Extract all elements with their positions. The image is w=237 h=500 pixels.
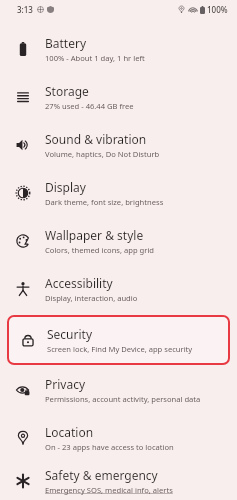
button[interactable]: Location — [0, 414, 237, 462]
staticText: 100% - About 1 day, 1 hr left — [45, 53, 145, 63]
button[interactable]: Battery — [0, 25, 237, 73]
staticText: On - 23 apps have access to location — [45, 442, 174, 452]
button[interactable]: Display — [0, 169, 237, 217]
staticText: Dark theme, font size, brightness — [45, 197, 164, 207]
staticText: Colors, themed icons, app grid — [45, 245, 155, 255]
staticText: Display — [45, 179, 86, 195]
button[interactable]: Sound & vibration — [0, 121, 237, 169]
staticText: Security — [47, 326, 93, 342]
button[interactable]: Privacy — [0, 366, 237, 414]
staticText: Accessibility — [45, 275, 113, 291]
button[interactable]: Security — [0, 313, 237, 366]
staticText: Storage — [45, 83, 89, 99]
staticText: 27% used - 46.44 GB free — [45, 101, 134, 111]
staticText: 3:13 — [17, 4, 33, 15]
staticText: 100% — [207, 4, 228, 15]
staticText: Sound & vibration — [45, 131, 147, 147]
staticText: Display, interaction, audio — [45, 293, 138, 303]
button[interactable]: Safety & emergency — [0, 462, 237, 500]
staticText: Permissions, account activity, personal … — [45, 394, 201, 404]
staticText: Volume, haptics, Do Not Disturb — [45, 149, 160, 159]
staticText: Screen lock, Find My Device, app securit… — [47, 344, 193, 354]
button[interactable]: Wallpaper & style — [0, 217, 237, 265]
button[interactable]: Storage — [0, 73, 237, 121]
staticText: Safety & emergency — [45, 467, 158, 483]
staticText: Location — [45, 424, 94, 440]
button[interactable]: Accessibility — [0, 265, 237, 313]
staticText: Wallpaper & style — [45, 227, 144, 243]
staticText: Emergency SOS, medical info, alerts — [45, 485, 173, 495]
staticText: Privacy — [45, 376, 86, 392]
staticText: Battery — [45, 35, 87, 51]
